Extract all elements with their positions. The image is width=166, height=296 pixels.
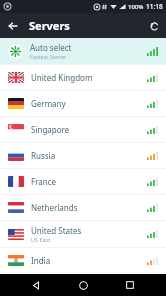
staticText: Fastest Server <box>30 53 67 60</box>
staticText: Netherlands <box>31 202 78 213</box>
staticText: Singapore <box>31 124 70 135</box>
staticText: France <box>31 176 57 187</box>
button[interactable]: Auto select <box>0 38 166 64</box>
staticText: US East <box>31 236 51 243</box>
staticText: India <box>31 255 51 266</box>
button[interactable]: Recents <box>119 274 141 296</box>
staticText: United States <box>31 225 82 236</box>
button[interactable]: United States <box>0 221 166 247</box>
button[interactable]: United Kingdom <box>0 65 166 90</box>
button[interactable]: Singapore <box>0 117 166 142</box>
staticText: 100% <box>128 3 144 11</box>
staticText: 11:18 <box>146 2 163 11</box>
button[interactable]: Refresh <box>146 18 162 34</box>
staticText: United Kingdom <box>31 72 93 83</box>
button[interactable]: Back <box>5 18 21 34</box>
button[interactable]: Netherlands <box>0 195 166 220</box>
staticText: Germany <box>31 98 66 109</box>
button[interactable]: Germany <box>0 91 166 116</box>
button[interactable]: Home <box>72 274 94 296</box>
button[interactable]: India <box>0 248 166 273</box>
button[interactable]: Russia <box>0 143 166 168</box>
button[interactable]: Back <box>25 274 47 296</box>
staticText: Russia <box>31 150 56 161</box>
staticText: Servers <box>29 18 70 33</box>
staticText: Auto select <box>30 42 72 53</box>
button[interactable]: France <box>0 169 166 194</box>
